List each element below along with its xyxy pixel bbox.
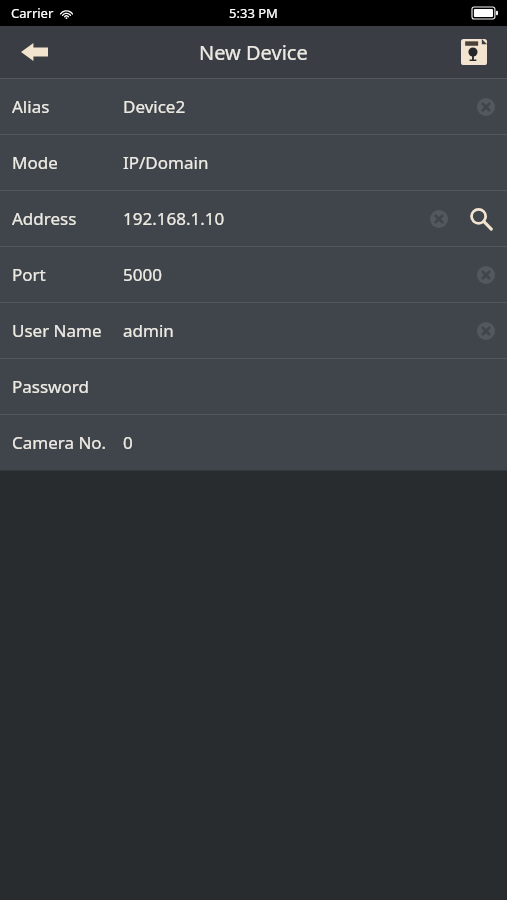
staticText: admin — [123, 319, 174, 342]
staticText: 192.168.1.10 — [123, 207, 225, 230]
staticText: Camera No. — [12, 431, 107, 454]
button[interactable]: Password — [0, 359, 507, 414]
button[interactable]: Clear — [419, 199, 459, 239]
staticText: Password — [12, 375, 89, 398]
button[interactable]: Back — [8, 26, 60, 78]
staticText: 5:33 PM — [229, 4, 278, 22]
staticText: IP/Domain — [123, 151, 209, 174]
staticText: Port — [12, 263, 46, 286]
button[interactable]: Address — [0, 191, 507, 246]
staticText: 5000 — [123, 263, 162, 286]
button[interactable]: Save — [450, 28, 498, 76]
button[interactable]: Search — [459, 197, 503, 241]
button[interactable]: Mode — [0, 135, 507, 190]
staticText: User Name — [12, 319, 102, 342]
button[interactable]: Camera No. — [0, 415, 507, 470]
staticText: Device2 — [123, 95, 186, 118]
button[interactable]: Port — [0, 247, 507, 302]
button[interactable]: Clear — [466, 255, 506, 295]
staticText: Mode — [12, 151, 58, 174]
staticText: Address — [12, 207, 77, 230]
button[interactable]: Clear — [466, 87, 506, 127]
staticText: 0 — [123, 431, 133, 454]
staticText: New Device — [199, 39, 308, 66]
button[interactable]: Clear — [466, 311, 506, 351]
staticText: Carrier — [11, 4, 54, 22]
button[interactable]: Alias — [0, 79, 507, 134]
staticText: Alias — [12, 95, 50, 118]
button[interactable]: User Name — [0, 303, 507, 358]
